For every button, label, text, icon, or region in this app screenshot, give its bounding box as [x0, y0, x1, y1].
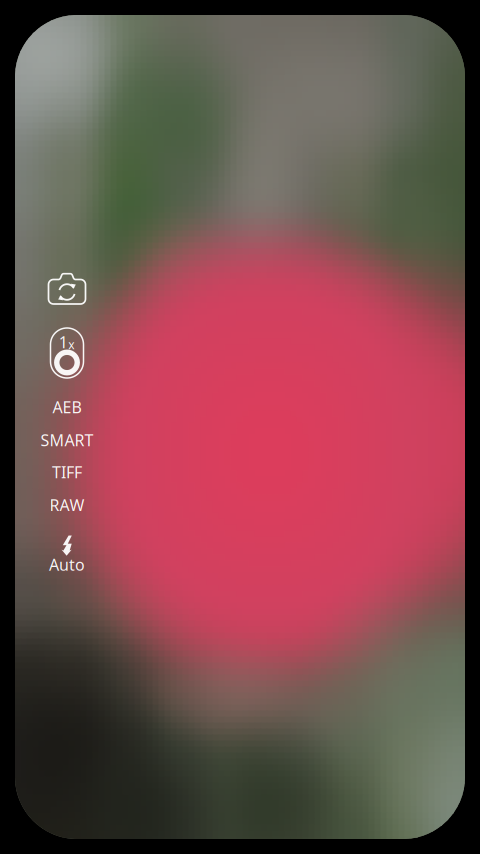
staticText: SMART: [40, 429, 93, 451]
staticText: 1: [59, 331, 68, 353]
staticText: AEB: [52, 396, 81, 418]
button[interactable]: Auto: [29, 532, 105, 576]
button[interactable]: Switch camera: [39, 267, 95, 311]
button[interactable]: RAW: [29, 494, 105, 516]
button[interactable]: SMART: [29, 429, 105, 451]
button[interactable]: Zoom level 1x: [39, 324, 95, 382]
button[interactable]: TIFF: [29, 461, 105, 483]
staticText: TIFF: [52, 461, 82, 483]
staticText: RAW: [49, 494, 84, 516]
staticText: Auto: [49, 554, 85, 575]
button[interactable]: AEB: [29, 396, 105, 418]
staticText: x: [68, 337, 74, 353]
